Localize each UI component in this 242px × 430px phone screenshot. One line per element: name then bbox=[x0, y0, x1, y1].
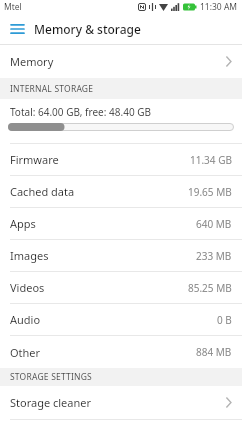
staticText: Videos bbox=[10, 280, 45, 295]
staticText: Apps bbox=[10, 216, 36, 231]
button[interactable]: Cached data bbox=[0, 176, 242, 208]
staticText: INTERNAL STORAGE bbox=[10, 83, 94, 95]
staticText: Total: 64.00 GB, free: 48.40 GB bbox=[10, 105, 151, 119]
button[interactable]: Audio bbox=[0, 304, 242, 336]
staticText: Images bbox=[10, 248, 49, 263]
staticText: 85.25 MB bbox=[188, 281, 232, 295]
button[interactable]: Images bbox=[0, 240, 242, 272]
staticText: 19.65 MB bbox=[188, 185, 232, 199]
staticText: Audio bbox=[10, 312, 41, 327]
staticText: Other bbox=[10, 345, 41, 360]
button[interactable]: Other bbox=[0, 336, 242, 368]
button[interactable]: Videos bbox=[0, 272, 242, 304]
button[interactable] bbox=[0, 14, 34, 44]
staticText: Cached data bbox=[10, 184, 75, 199]
button[interactable]: Storage cleaner bbox=[0, 386, 242, 419]
staticText: 233 MB bbox=[196, 249, 232, 263]
staticText: STORAGE SETTINGS bbox=[10, 371, 92, 383]
button[interactable]: Apps bbox=[0, 208, 242, 240]
button[interactable]: Memory bbox=[0, 45, 242, 78]
staticText: Memory bbox=[10, 54, 54, 69]
button[interactable]: Firmware bbox=[0, 144, 242, 176]
staticText: 640 MB bbox=[196, 217, 232, 231]
staticText: 0 B bbox=[217, 313, 232, 327]
staticText: 11:30 AM bbox=[200, 1, 238, 13]
staticText: Mtel bbox=[4, 1, 22, 13]
staticText: Storage cleaner bbox=[10, 395, 92, 410]
staticText: 11.34 GB bbox=[190, 153, 232, 167]
staticText: 884 MB bbox=[196, 345, 232, 359]
staticText: Memory & storage bbox=[34, 21, 141, 37]
staticText: Firmware bbox=[10, 152, 59, 167]
